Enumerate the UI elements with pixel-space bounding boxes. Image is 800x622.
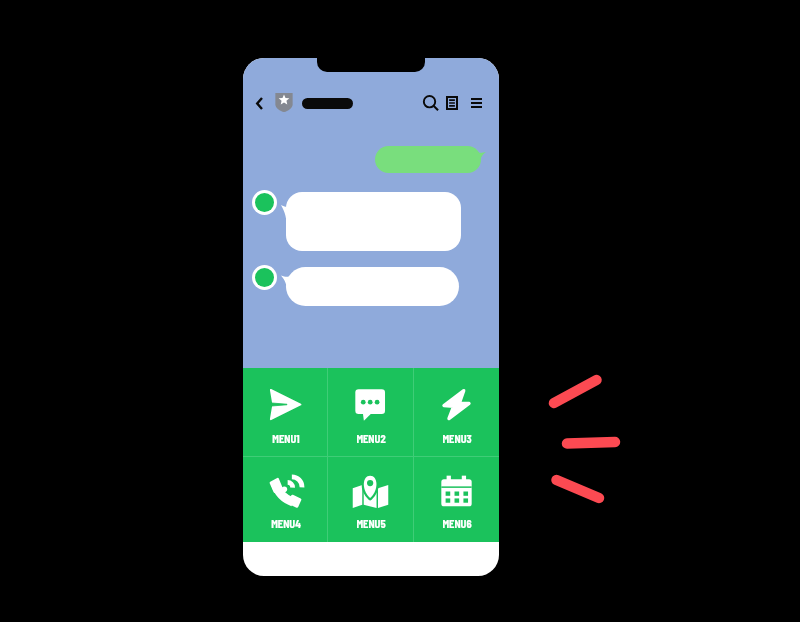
- button[interactable]: Sent message: [375, 146, 486, 173]
- staticText: MENU1: [272, 432, 300, 445]
- button[interactable]: Contact avatar: [252, 190, 277, 215]
- staticText: MENU5: [356, 517, 386, 530]
- button[interactable]: Received message: [281, 267, 459, 306]
- staticText: MENU6: [442, 517, 472, 530]
- button[interactable]: Back: [245, 90, 273, 116]
- staticText: MENU3: [442, 432, 472, 445]
- button[interactable]: MENU2: [328, 368, 413, 456]
- button[interactable]: MENU4: [243, 457, 327, 542]
- button[interactable]: MENU1: [243, 368, 327, 456]
- button[interactable]: [302, 98, 353, 109]
- button[interactable]: Contact avatar: [252, 265, 277, 290]
- button[interactable]: MENU3: [414, 368, 499, 456]
- staticText: MENU2: [356, 432, 386, 445]
- button[interactable]: Notes: [439, 90, 465, 116]
- staticText: MENU4: [271, 517, 301, 530]
- button[interactable]: Menu: [463, 90, 489, 116]
- button[interactable]: MENU5: [328, 457, 413, 542]
- button[interactable]: MENU6: [414, 457, 499, 542]
- button[interactable]: Received message: [281, 192, 461, 251]
- button[interactable]: Search: [417, 90, 443, 116]
